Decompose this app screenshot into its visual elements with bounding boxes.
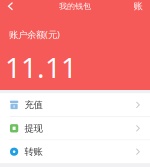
staticText: 11.11 bbox=[5, 49, 77, 86]
staticText: 账户余额(元) bbox=[9, 28, 60, 41]
staticText: 账 bbox=[133, 0, 142, 12]
staticText: 提现 bbox=[25, 123, 43, 134]
staticText: 充值 bbox=[25, 99, 43, 111]
button[interactable]: 账 bbox=[126, 0, 150, 12]
button[interactable]: Back bbox=[0, 0, 21, 13]
button[interactable]: 提现 bbox=[0, 117, 150, 140]
staticText: 转账 bbox=[25, 146, 43, 157]
staticText: 我的钱包 bbox=[59, 1, 91, 11]
button[interactable]: 转账 bbox=[0, 140, 150, 163]
button[interactable]: 充值 bbox=[0, 93, 150, 116]
